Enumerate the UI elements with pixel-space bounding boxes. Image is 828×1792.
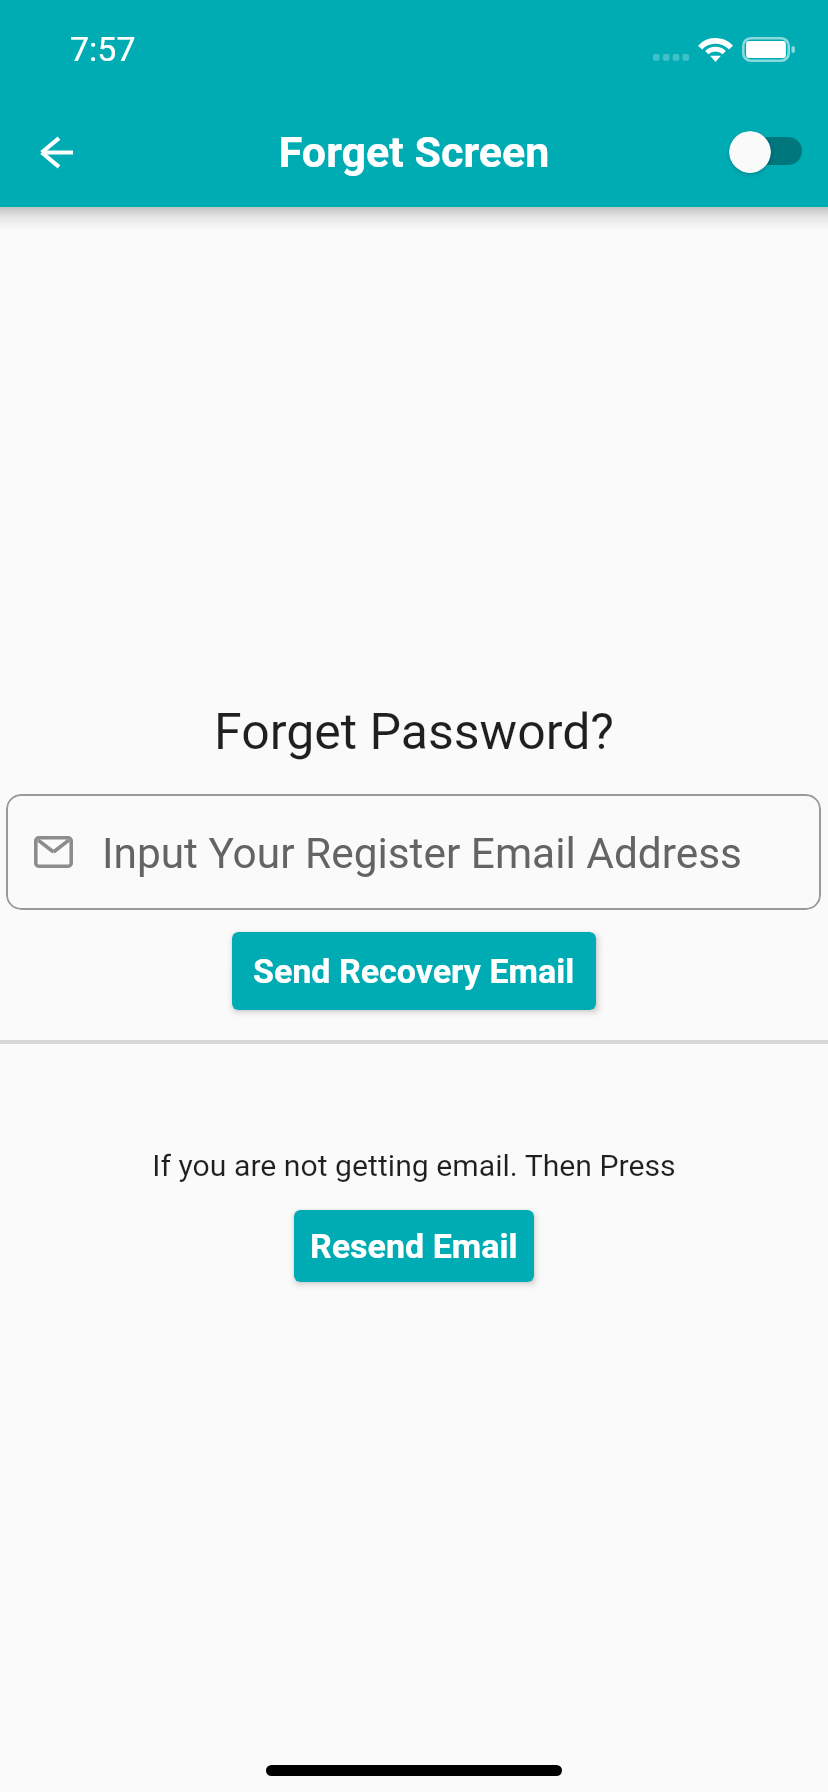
staticText: Input Your Register Email Address — [102, 829, 742, 879]
staticText: Resend Email — [310, 1226, 518, 1266]
button[interactable]: Send Recovery Email — [232, 932, 596, 1010]
staticText: Send Recovery Email — [253, 951, 575, 991]
staticText: Forget Password? — [0, 703, 828, 762]
button[interactable]: Back — [22, 118, 90, 186]
staticText: Forget Screen — [0, 127, 828, 177]
staticText: 7:57 — [70, 29, 136, 69]
staticText: If you are not getting email. Then Press — [0, 1148, 828, 1183]
button[interactable]: Resend Email — [294, 1210, 534, 1282]
button[interactable]: Toggle dark mode — [723, 125, 808, 179]
button[interactable]: Input Your Register Email Address — [6, 794, 821, 910]
